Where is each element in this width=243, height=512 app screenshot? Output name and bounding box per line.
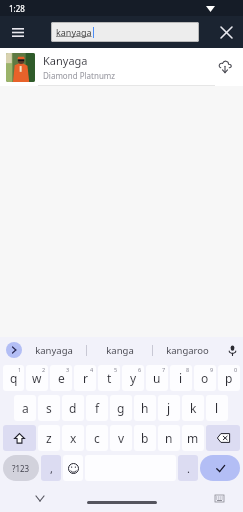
button[interactable]: o: [194, 365, 216, 391]
staticText: 3: [66, 366, 70, 373]
staticText: a: [22, 400, 29, 416]
staticText: 5: [114, 366, 118, 373]
staticText: s: [46, 400, 52, 416]
staticText: o: [201, 370, 209, 386]
staticText: kanga: [106, 344, 134, 357]
button[interactable]: e: [50, 365, 72, 391]
staticText: y: [130, 370, 137, 386]
staticText: j: [167, 400, 171, 416]
button[interactable]: m: [182, 425, 204, 451]
button[interactable]: Change keyboard: [209, 488, 229, 508]
button[interactable]: Enter: [200, 455, 240, 481]
staticText: d: [69, 400, 77, 416]
staticText: e: [58, 370, 65, 386]
staticText: m: [187, 430, 199, 446]
staticText: 6: [138, 366, 142, 373]
button[interactable]: j: [158, 395, 180, 421]
button[interactable]: n: [158, 425, 180, 451]
button[interactable]: kanga: [87, 337, 152, 363]
button[interactable]: Menu: [7, 21, 29, 43]
staticText: 7: [162, 366, 166, 373]
staticText: kanyaga: [35, 344, 73, 357]
button[interactable]: k: [182, 395, 204, 421]
staticText: kangaroo: [166, 344, 209, 357]
button[interactable]: .: [178, 455, 198, 481]
button[interactable]: c: [86, 425, 108, 451]
staticText: 4: [90, 366, 94, 373]
button[interactable]: a: [14, 395, 36, 421]
staticText: c: [94, 430, 100, 446]
staticText: n: [165, 430, 173, 446]
staticText: 2: [42, 366, 46, 373]
button[interactable]: i: [170, 365, 192, 391]
staticText: Diamond Platnumz: [43, 70, 116, 81]
button[interactable]: f: [86, 395, 108, 421]
button[interactable]: kanyaga: [22, 337, 86, 363]
button[interactable]: u: [146, 365, 168, 391]
button[interactable]: More suggestions: [6, 342, 22, 358]
button[interactable]: Voice input: [221, 337, 243, 363]
button[interactable]: z: [38, 425, 60, 451]
staticText: u: [153, 370, 161, 386]
staticText: h: [141, 400, 149, 416]
button[interactable]: Emoji: [63, 455, 83, 481]
button[interactable]: y: [122, 365, 144, 391]
staticText: b: [141, 430, 149, 446]
staticText: v: [118, 430, 125, 446]
button[interactable]: d: [62, 395, 84, 421]
button[interactable]: t: [98, 365, 120, 391]
staticText: q: [10, 370, 18, 386]
button[interactable]: Hide keyboard: [30, 488, 50, 508]
staticText: p: [225, 370, 233, 386]
button[interactable]: h: [134, 395, 156, 421]
button[interactable]: kangaroo: [153, 337, 221, 363]
button[interactable]: ?123: [3, 455, 39, 481]
staticText: g: [117, 400, 125, 416]
staticText: 8: [186, 366, 190, 373]
button[interactable]: q: [3, 365, 24, 391]
button[interactable]: l: [206, 395, 228, 421]
button[interactable]: Shift: [3, 425, 36, 451]
staticText: 1:28: [9, 3, 25, 14]
staticText: r: [83, 370, 88, 386]
button[interactable]: p: [218, 365, 240, 391]
button[interactable]: v: [110, 425, 132, 451]
button[interactable]: x: [62, 425, 84, 451]
button[interactable]: Close: [215, 21, 237, 43]
staticText: ,: [50, 461, 53, 476]
staticText: kanyaga: [56, 26, 92, 38]
staticText: l: [215, 400, 219, 416]
staticText: t: [107, 370, 112, 386]
staticText: w: [32, 370, 42, 386]
button[interactable]: g: [110, 395, 132, 421]
button[interactable]: r: [74, 365, 96, 391]
staticText: i: [179, 370, 183, 386]
button[interactable]: s: [38, 395, 60, 421]
staticText: k: [190, 400, 197, 416]
staticText: ?123: [12, 463, 30, 474]
staticText: .: [187, 461, 190, 476]
button[interactable]: w: [26, 365, 48, 391]
staticText: 0: [234, 366, 238, 373]
staticText: 9: [210, 366, 214, 373]
staticText: x: [70, 430, 77, 446]
staticText: Kanyaga: [43, 53, 88, 68]
button[interactable]: Backspace: [206, 425, 240, 451]
button[interactable]: ,: [41, 455, 61, 481]
button[interactable]: Download: [213, 55, 237, 79]
staticText: 1: [18, 366, 22, 373]
button[interactable]: b: [134, 425, 156, 451]
button[interactable]: Kanyaga: [0, 48, 243, 86]
staticText: f: [95, 400, 100, 416]
staticText: z: [46, 430, 52, 446]
button[interactable]: kanyaga: [51, 22, 199, 42]
